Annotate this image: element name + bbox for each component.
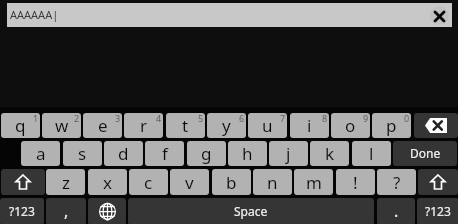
button[interactable]: Switch language (88, 198, 126, 224)
staticText: n (267, 171, 278, 194)
staticText: u (262, 114, 273, 137)
button[interactable]: ?123 (0, 198, 44, 224)
button[interactable]: r (124, 113, 163, 138)
button[interactable]: a (21, 141, 60, 166)
staticText: 2 (74, 113, 80, 124)
button[interactable]: Shift (418, 169, 458, 195)
button[interactable]: x (88, 169, 127, 195)
staticText: v (185, 171, 194, 194)
button[interactable]: u (248, 113, 287, 138)
staticText: 6 (239, 113, 245, 124)
button[interactable]: e (83, 113, 122, 138)
button[interactable]: Shift (1, 169, 45, 195)
staticText: j (286, 142, 291, 165)
staticText: z (62, 171, 70, 194)
button[interactable]: ! (336, 169, 375, 195)
staticText: 5 (198, 113, 204, 124)
staticText: ?123 (9, 203, 35, 219)
button[interactable]: t (166, 113, 205, 138)
staticText: m (306, 171, 322, 194)
staticText: p (386, 114, 397, 137)
button[interactable]: v (170, 169, 209, 195)
button[interactable]: w (42, 113, 81, 138)
button[interactable]: f (145, 141, 184, 166)
staticText: h (242, 142, 253, 165)
button[interactable]: Backspace (414, 113, 458, 138)
staticText: l (369, 142, 374, 165)
staticText: 0 (404, 113, 410, 124)
staticText: 8 (322, 113, 328, 124)
staticText: a (36, 142, 46, 165)
button[interactable]: ?123 (417, 198, 458, 224)
button[interactable]: m (294, 169, 333, 195)
staticText: s (78, 142, 87, 165)
button[interactable]: . (377, 198, 415, 224)
staticText: b (226, 171, 237, 194)
staticText: e (98, 114, 108, 137)
staticText: o (345, 114, 356, 137)
button[interactable]: y (207, 113, 246, 138)
staticText: AAAAAA| (10, 7, 59, 22)
button[interactable]: o (331, 113, 370, 138)
button[interactable]: c (129, 169, 168, 195)
staticText: 3 (115, 113, 121, 124)
staticText: q (15, 114, 26, 137)
button[interactable]: Space (128, 198, 374, 224)
button[interactable]: j (269, 141, 308, 166)
staticText: r (140, 114, 148, 137)
staticText: . (394, 200, 399, 222)
staticText: , (64, 200, 69, 222)
button[interactable]: k (310, 141, 349, 166)
button[interactable]: , (46, 198, 86, 224)
button[interactable]: AAAAAA| (7, 3, 452, 27)
staticText: y (222, 114, 231, 137)
staticText: x (103, 171, 112, 194)
staticText: ! (353, 171, 358, 194)
staticText: 7 (280, 113, 286, 124)
staticText: f (162, 142, 168, 165)
staticText: Space (234, 203, 268, 219)
button[interactable]: z (46, 169, 85, 195)
staticText: g (201, 142, 212, 165)
staticText: 4 (156, 113, 162, 124)
button[interactable]: b (212, 169, 251, 195)
staticText: d (118, 142, 129, 165)
button[interactable]: h (228, 141, 267, 166)
button[interactable]: d (104, 141, 143, 166)
staticText: i (307, 114, 312, 137)
staticText: t (182, 114, 189, 137)
button[interactable]: g (187, 141, 226, 166)
staticText: ?123 (425, 203, 451, 219)
button[interactable]: s (63, 141, 102, 166)
staticText: k (325, 142, 335, 165)
staticText: w (55, 114, 69, 137)
staticText: 1 (33, 113, 39, 124)
button[interactable]: i (290, 113, 329, 138)
button[interactable]: l (352, 141, 391, 166)
button[interactable]: q (1, 113, 40, 138)
button[interactable]: ? (377, 169, 416, 195)
button[interactable]: Done (393, 141, 457, 166)
staticText: c (144, 171, 153, 194)
button[interactable]: p (372, 113, 411, 138)
staticText: ? (393, 171, 401, 194)
button[interactable]: n (253, 169, 292, 195)
staticText: 9 (363, 113, 369, 124)
button[interactable]: Clear text (430, 6, 449, 25)
staticText: Done (410, 145, 441, 161)
